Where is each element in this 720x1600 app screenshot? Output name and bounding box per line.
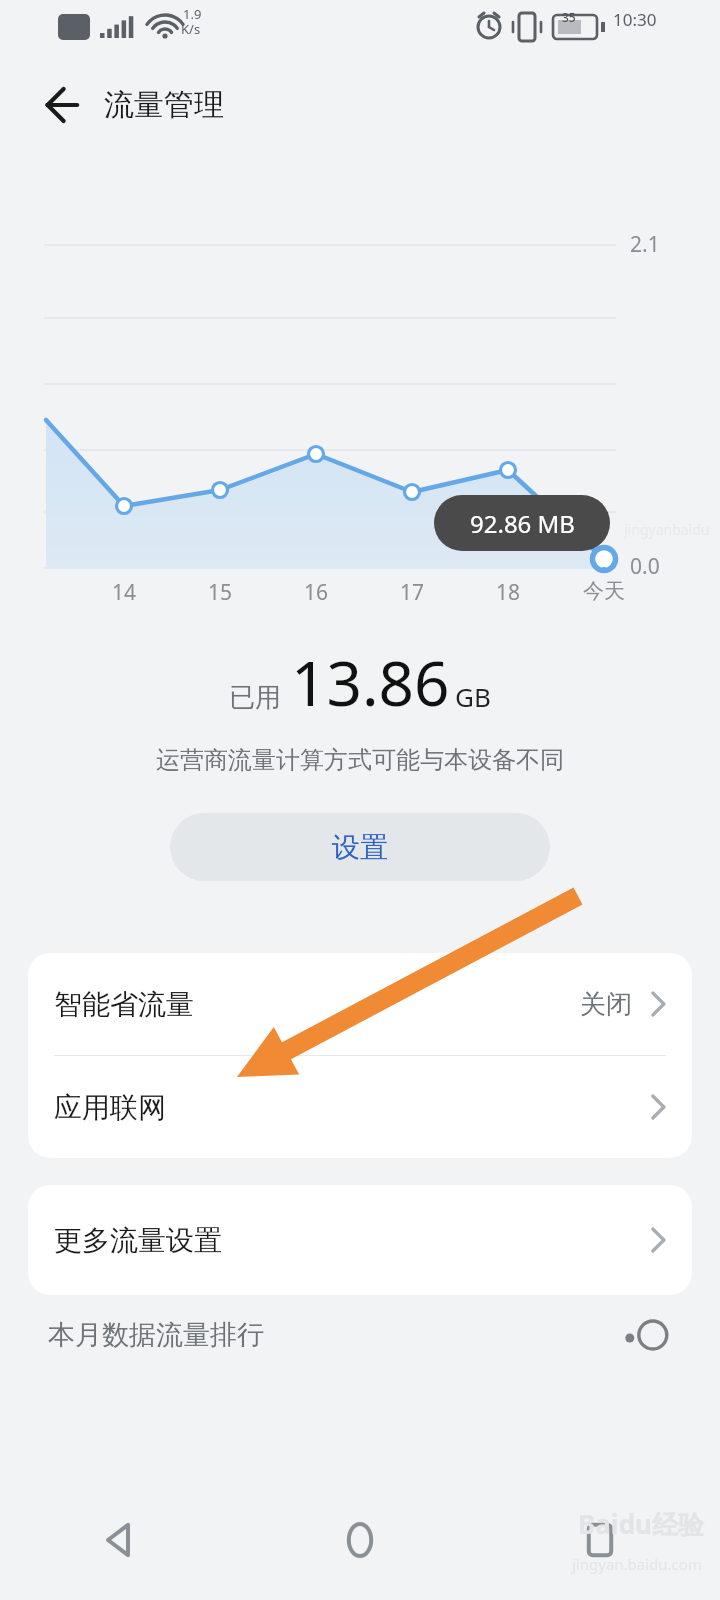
staticText: 1.9: [183, 5, 202, 23]
staticText: 35: [562, 9, 576, 25]
staticText: 智能省流量: [54, 987, 194, 1022]
staticText: 13.86: [291, 640, 450, 724]
staticText: 运营商流量计算方式可能与本设备不同: [0, 745, 720, 775]
staticText: 15: [208, 578, 233, 607]
staticText: 17: [400, 578, 425, 607]
button[interactable]: 智能省流量: [28, 953, 692, 1055]
staticText: 本月数据流量排行: [48, 1318, 264, 1352]
staticText: 已用: [229, 681, 281, 714]
staticText: 16: [304, 578, 329, 607]
staticText: K/s: [181, 20, 201, 38]
staticText: 2.1: [630, 230, 660, 259]
staticText: jingyanbaidu: [624, 520, 710, 539]
staticText: 10:30: [613, 8, 657, 31]
staticText: 0.0: [630, 552, 660, 581]
button[interactable]: Back: [34, 77, 90, 133]
staticText: 更多流量设置: [54, 1223, 222, 1258]
button[interactable]: 应用联网: [28, 1056, 692, 1158]
staticText: 流量管理: [104, 86, 224, 124]
staticText: 92.86 MB: [470, 507, 575, 540]
staticText: 今天: [583, 578, 625, 604]
button[interactable]: 更多流量设置: [28, 1185, 692, 1295]
button[interactable]: Recents: [480, 1480, 720, 1600]
button[interactable]: 设置: [170, 813, 550, 881]
staticText: 18: [496, 578, 521, 607]
staticText: 应用联网: [54, 1090, 166, 1125]
staticText: 设置: [332, 830, 388, 865]
staticText: GB: [455, 679, 491, 714]
staticText: 14: [112, 578, 137, 607]
staticText: 关闭: [580, 988, 632, 1021]
button[interactable]: Back: [0, 1480, 240, 1600]
button[interactable]: Home: [240, 1480, 480, 1600]
staticText: jingyan.baidu.com: [572, 1554, 702, 1574]
button[interactable]: 本月数据流量排行: [0, 1295, 720, 1375]
staticText: Baidu经验: [578, 1506, 704, 1542]
